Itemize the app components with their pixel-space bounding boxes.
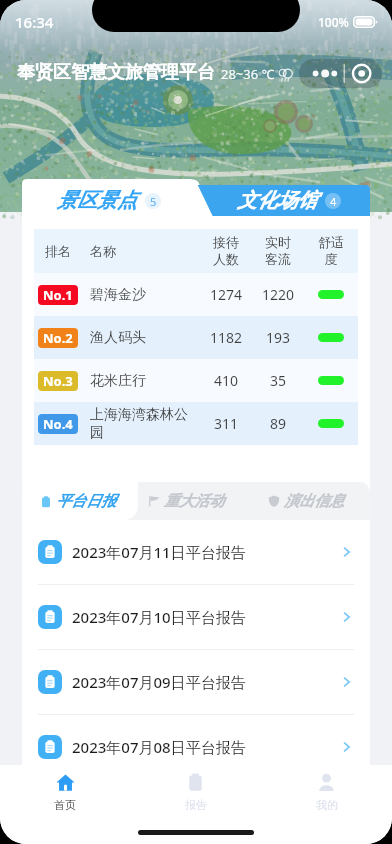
staticText: 排名 xyxy=(34,243,82,259)
button[interactable]: 报告 xyxy=(130,773,261,812)
staticText: 名称 xyxy=(90,243,200,259)
staticText: No.4 xyxy=(43,415,73,433)
staticText: 奉贤区智慧文旅管理平台 xyxy=(17,61,215,84)
button[interactable]: 2023年07月08日平台报告 xyxy=(38,715,354,779)
staticText: 平台日报 xyxy=(56,492,116,511)
staticText: 接待 人数 xyxy=(200,234,252,268)
staticText: 上海海湾森林公园 xyxy=(90,406,196,442)
staticText: No.2 xyxy=(43,329,73,347)
button[interactable]: 2023年07月11日平台报告 xyxy=(38,520,354,584)
staticText: 碧海金沙 xyxy=(90,286,196,304)
staticText: 4 xyxy=(330,194,337,209)
button[interactable]: 景区景点 xyxy=(22,179,196,222)
staticText: 28~36 ℃ xyxy=(221,65,275,83)
staticText: 报告 xyxy=(185,798,207,812)
button[interactable]: 演出信息 xyxy=(256,482,356,520)
staticText: 2023年07月08日平台报告 xyxy=(72,737,338,757)
button[interactable]: No.4 xyxy=(34,402,358,445)
button[interactable]: No.2 xyxy=(34,316,358,359)
staticText: 我的 xyxy=(316,798,338,812)
staticText: 1274 xyxy=(200,285,252,304)
staticText: 舒适 度 xyxy=(304,234,358,268)
staticText: 文化场馆 xyxy=(237,188,317,213)
button[interactable]: 我的 xyxy=(261,773,392,812)
staticText: 16:34 xyxy=(15,12,54,32)
staticText: 首页 xyxy=(54,798,76,812)
staticText: 410 xyxy=(200,371,252,390)
button[interactable]: No.3 xyxy=(34,359,358,402)
staticText: No.1 xyxy=(43,286,73,304)
staticText: 1182 xyxy=(200,328,252,347)
staticText: 1220 xyxy=(252,285,304,304)
staticText: No.3 xyxy=(43,372,73,390)
staticText: 311 xyxy=(200,414,252,433)
button[interactable]: No.1 xyxy=(34,273,358,316)
staticText: 渔人码头 xyxy=(90,329,196,347)
button[interactable]: More options xyxy=(299,59,382,88)
button[interactable]: 重大活动 xyxy=(138,482,234,520)
staticText: 实时 客流 xyxy=(252,234,304,268)
staticText: 花米庄行 xyxy=(90,372,196,390)
button[interactable]: 首页 xyxy=(0,773,130,812)
button[interactable]: 平台日报 xyxy=(22,482,138,520)
staticText: 重大活动 xyxy=(164,492,224,511)
staticText: 89 xyxy=(252,414,304,433)
button[interactable]: 2023年07月10日平台报告 xyxy=(38,585,354,649)
staticText: 5 xyxy=(150,194,157,209)
button[interactable]: 2023年07月09日平台报告 xyxy=(38,650,354,714)
staticText: 景区景点 xyxy=(57,188,137,213)
staticText: 193 xyxy=(252,328,304,347)
button[interactable]: 文化场馆 xyxy=(202,179,376,222)
staticText: 2023年07月11日平台报告 xyxy=(72,542,338,562)
staticText: 100% xyxy=(318,14,349,30)
staticText: 演出信息 xyxy=(284,492,344,511)
staticText: 2023年07月09日平台报告 xyxy=(72,672,338,692)
staticText: 2023年07月10日平台报告 xyxy=(72,607,338,627)
staticText: 35 xyxy=(252,371,304,390)
